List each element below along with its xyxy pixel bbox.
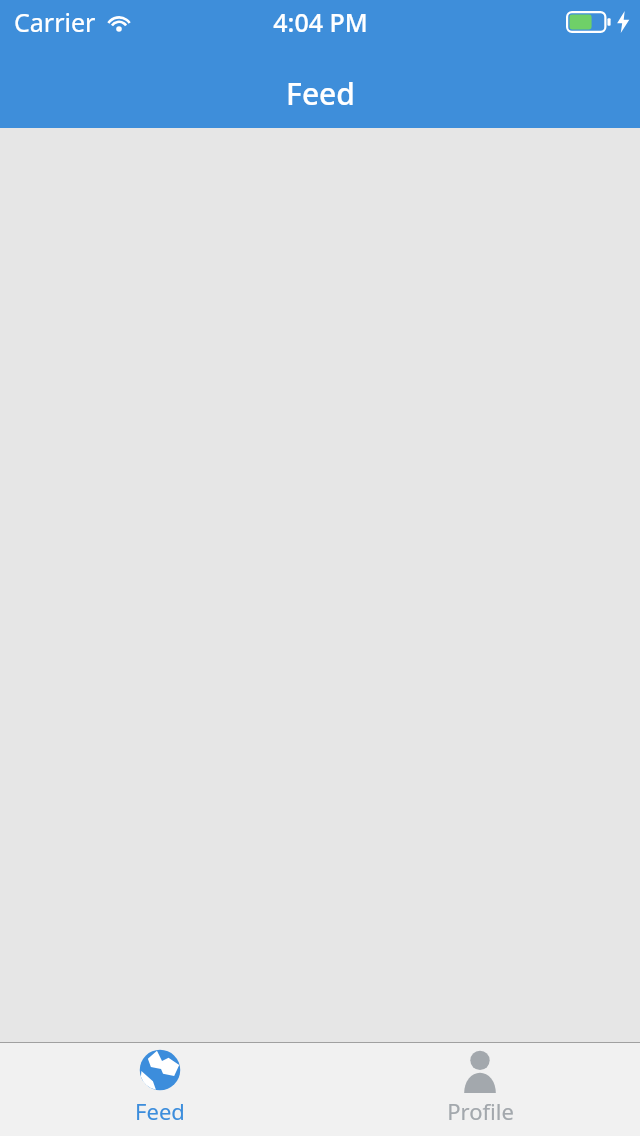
button[interactable]: Profile: [320, 1042, 640, 1136]
staticText: 4:04 PM: [273, 5, 368, 39]
staticText: Carrier: [14, 5, 96, 39]
staticText: Profile: [447, 1096, 514, 1126]
staticText: Feed: [286, 73, 355, 114]
staticText: Feed: [135, 1096, 185, 1126]
button[interactable]: Feed: [0, 1042, 320, 1136]
